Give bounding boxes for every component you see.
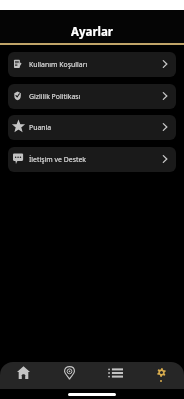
button[interactable]: Puanla <box>8 115 176 140</box>
staticText: İletişim ve Destek <box>29 155 87 164</box>
button[interactable]: İletişim ve Destek <box>8 147 176 172</box>
button[interactable]: Map <box>46 362 92 389</box>
staticText: Kullanım Koşulları <box>29 60 88 69</box>
button[interactable]: Home <box>0 362 46 389</box>
button[interactable]: List <box>92 362 138 389</box>
staticText: Puanla <box>29 123 52 132</box>
staticText: Ayarlar <box>71 24 114 40</box>
button[interactable]: Settings <box>138 362 184 389</box>
staticText: Gizlilik Politikası <box>29 92 81 101</box>
button[interactable]: Kullanım Koşulları <box>8 52 176 77</box>
button[interactable]: Gizlilik Politikası <box>8 84 176 109</box>
